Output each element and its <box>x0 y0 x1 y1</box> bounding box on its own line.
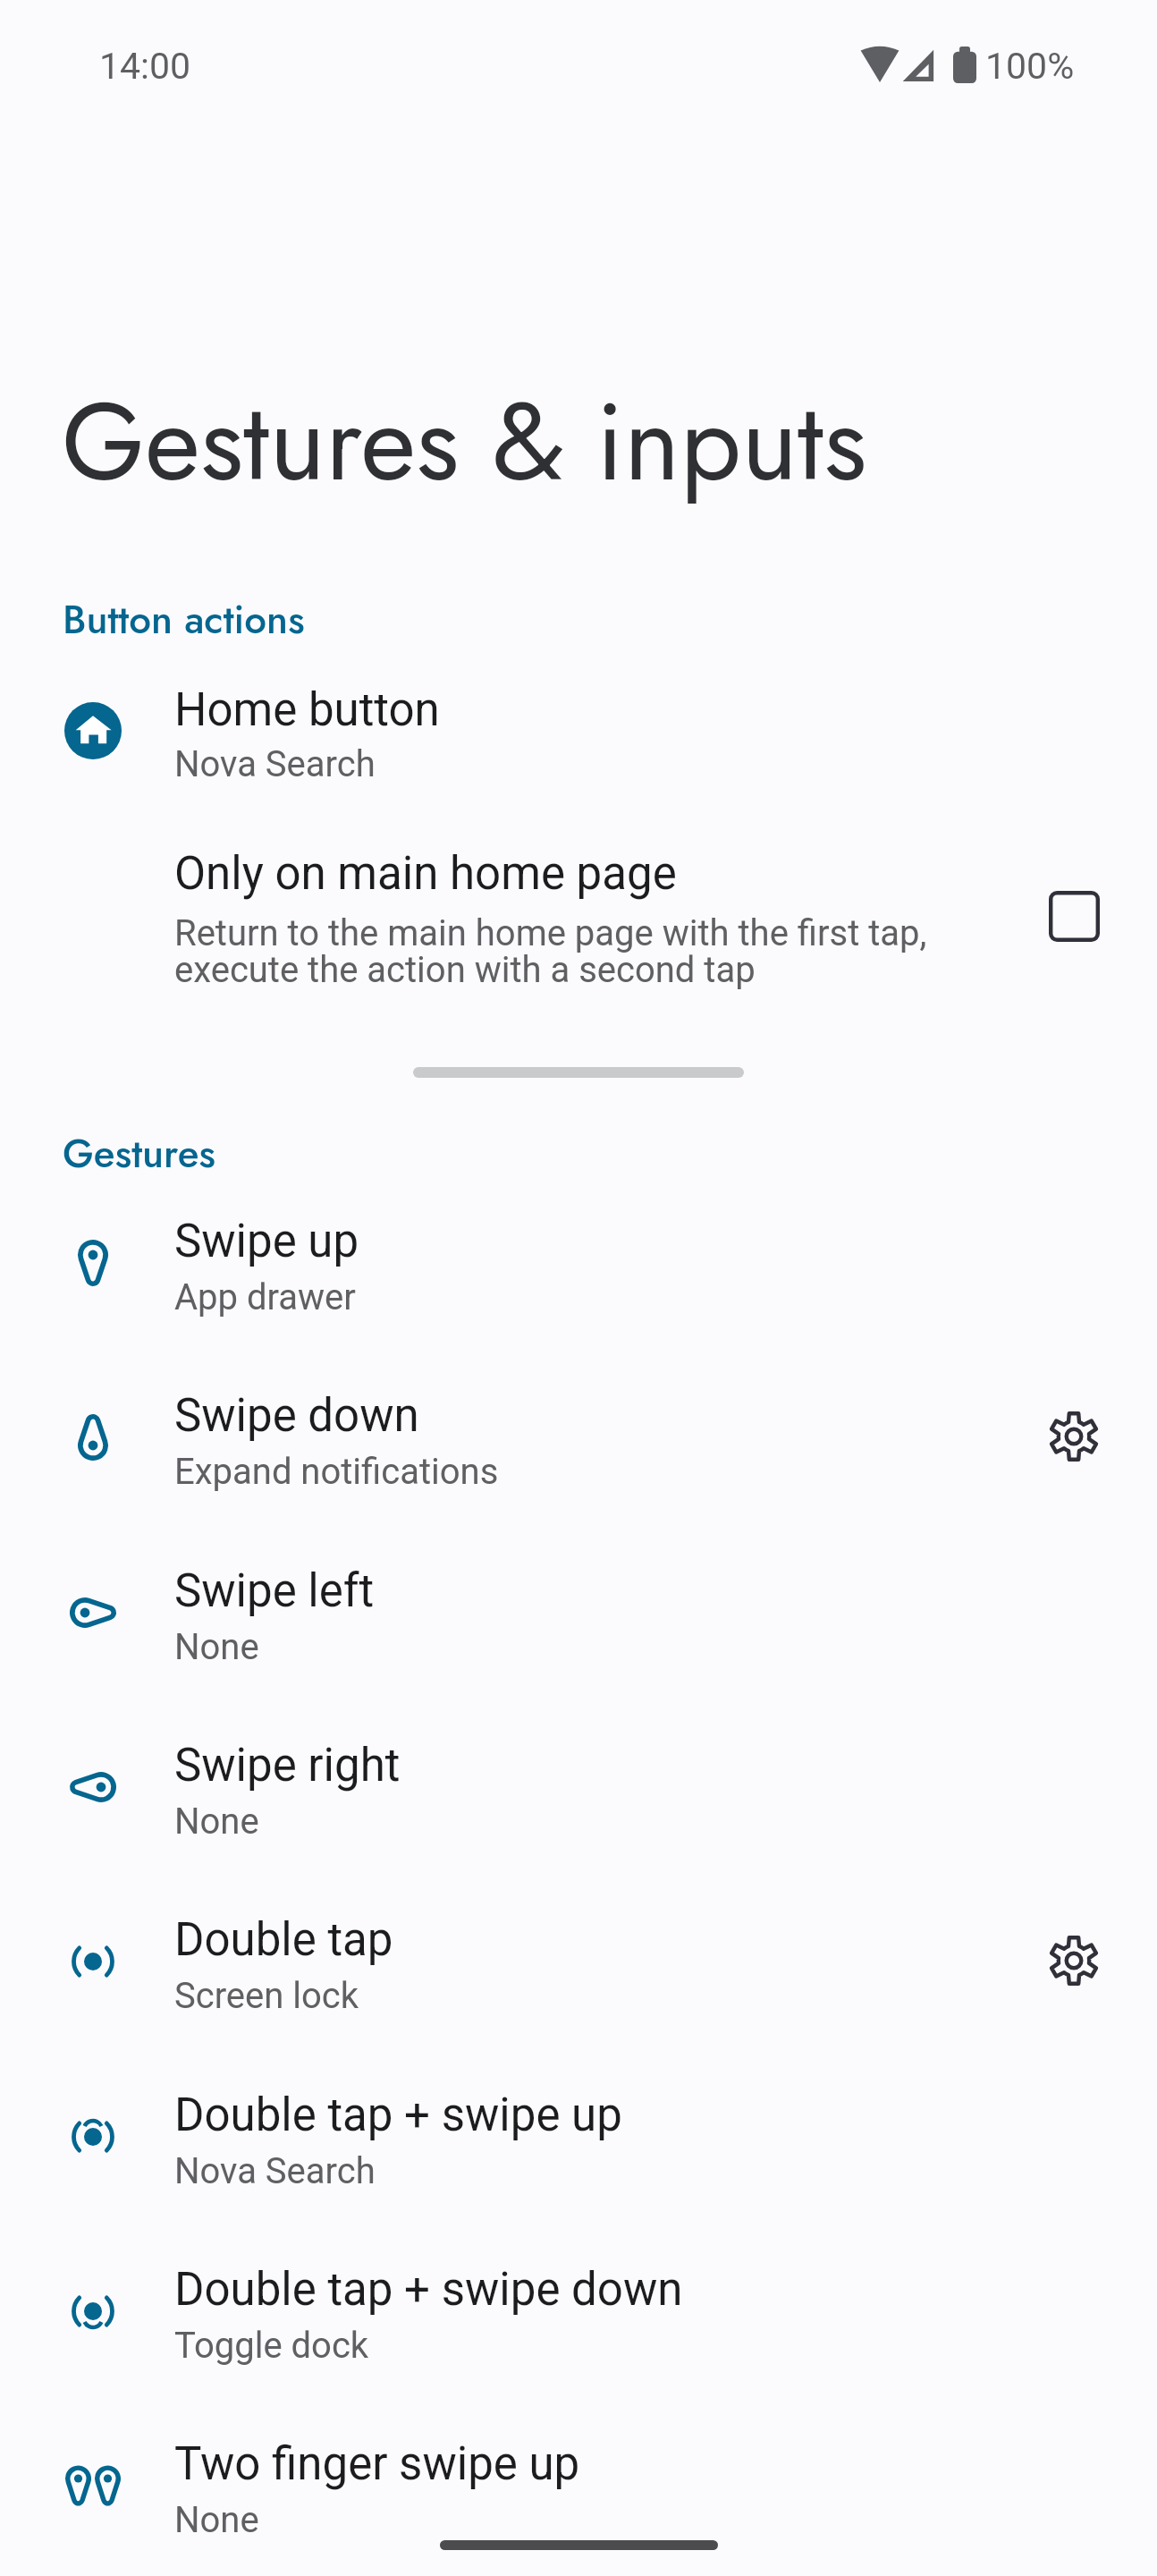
staticText: Toggle dock <box>174 2325 369 2367</box>
staticText: 14:00 <box>99 45 191 88</box>
staticText: Two finger swipe up <box>174 2437 580 2491</box>
button[interactable]: Home button <box>0 662 1157 805</box>
staticText: Home button <box>174 683 440 737</box>
button[interactable]: Swipe right <box>0 1704 1157 1878</box>
button[interactable]: Settings for Swipe down <box>1025 1387 1123 1486</box>
staticText: Screen lock <box>174 1975 359 2017</box>
button[interactable]: Swipe up <box>0 1180 1157 1354</box>
staticText: Double tap <box>174 1913 393 1967</box>
button[interactable]: Double tap + swipe up <box>0 2054 1157 2228</box>
staticText: Gestures <box>63 1125 215 1182</box>
staticText: Button actions <box>63 591 305 648</box>
staticText: Expand notifications <box>174 1451 499 1493</box>
button[interactable]: Only on main home page, checkbox <box>1029 871 1119 961</box>
staticText: Double tap + swipe down <box>174 2263 683 2317</box>
button[interactable]: Double tap + swipe down <box>0 2228 1157 2402</box>
staticText: Gestures & inputs <box>62 365 867 520</box>
staticText: Return to the main home page with the fi… <box>174 912 945 991</box>
staticText: Swipe down <box>174 1389 419 1443</box>
staticText: Swipe left <box>174 1564 375 1618</box>
staticText: None <box>174 1801 259 1843</box>
button[interactable]: Two finger swipe up <box>0 2402 1157 2576</box>
button[interactable]: Swipe left <box>0 1529 1157 1704</box>
staticText: Only on main home page <box>174 847 677 901</box>
staticText: Nova Search <box>174 743 376 785</box>
staticText: App drawer <box>174 1276 356 1318</box>
staticText: None <box>174 1626 259 1668</box>
staticText: 100% <box>985 45 1075 88</box>
staticText: Nova Search <box>174 2150 376 2192</box>
staticText: Double tap + swipe up <box>174 2089 622 2142</box>
staticText: Swipe up <box>174 1215 359 1268</box>
button[interactable]: Settings for Double tap <box>1025 1911 1123 2010</box>
staticText: None <box>174 2499 259 2541</box>
button[interactable]: Only on main home page <box>0 827 1157 1006</box>
button[interactable]: Double tap <box>0 1878 1157 2053</box>
button[interactable]: Swipe down <box>0 1354 1157 1529</box>
staticText: Swipe right <box>174 1739 401 1792</box>
